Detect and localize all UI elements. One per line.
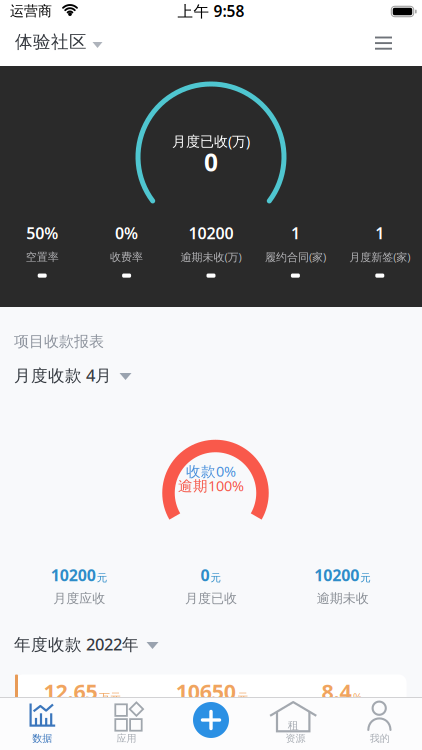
staticText: %: [353, 690, 362, 704]
staticText: 月度收款 4月: [14, 364, 112, 386]
staticText: 元: [97, 571, 108, 584]
staticText: 万元: [99, 691, 121, 704]
button[interactable]: 我的: [338, 697, 422, 750]
staticText: 年度收款 2022年: [14, 633, 139, 655]
staticText: 0: [200, 564, 209, 586]
staticText: 收款0%: [186, 461, 236, 481]
staticText: 租: [288, 719, 299, 732]
button[interactable]: 新增: [193, 702, 229, 738]
staticText: 元: [360, 571, 371, 584]
staticText: 项目收款报表: [14, 332, 104, 351]
button[interactable]: 体验社区: [0, 20, 103, 64]
button[interactable]: 菜单: [365, 26, 402, 60]
staticText: 资源: [285, 732, 305, 745]
staticText: 逾期未收: [317, 590, 369, 606]
staticText: 运营商: [10, 2, 52, 20]
staticText: 我的: [370, 732, 390, 745]
staticText: 体验社区: [15, 31, 87, 53]
button[interactable]: 数据: [0, 697, 84, 750]
staticText: 数据: [32, 732, 52, 745]
staticText: 应用: [117, 732, 137, 745]
staticText: 月度已收(万): [172, 132, 250, 150]
staticText: 12.65: [44, 677, 98, 706]
staticText: 空置率: [26, 250, 59, 264]
staticText: 收费率: [110, 250, 143, 264]
staticText: 月度已收: [185, 590, 237, 606]
staticText: 元: [237, 691, 248, 704]
staticText: 逾期100%: [178, 476, 244, 495]
staticText: 50%: [26, 222, 58, 244]
staticText: 元: [210, 571, 221, 584]
staticText: 8.4: [321, 677, 351, 706]
staticText: 10200: [188, 222, 233, 244]
staticText: 月度应收: [53, 590, 105, 606]
staticText: 10200: [314, 564, 359, 586]
staticText: 1: [291, 222, 300, 244]
staticText: 上午 9:58: [177, 1, 244, 21]
staticText: 履约合同(家): [265, 250, 326, 264]
button[interactable]: 月度收款 4月: [0, 360, 132, 390]
staticText: 10650: [176, 677, 236, 706]
button[interactable]: 租: [253, 697, 338, 750]
staticText: 0%: [115, 222, 138, 244]
button[interactable]: 年度收款 2022年: [0, 629, 159, 659]
staticText: 月度新签(家): [349, 250, 410, 264]
staticText: 1: [375, 222, 384, 244]
staticText: 0: [204, 146, 218, 178]
staticText: 10200: [51, 564, 96, 586]
staticText: 逾期未收(万): [180, 250, 241, 264]
button[interactable]: 应用: [84, 697, 169, 750]
